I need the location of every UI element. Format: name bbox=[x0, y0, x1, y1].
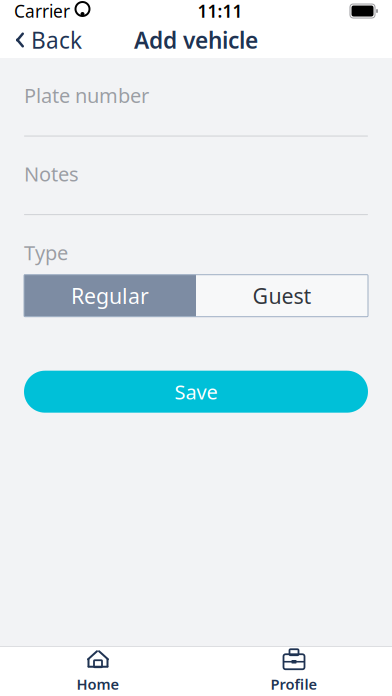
staticText: Regular bbox=[71, 281, 149, 310]
staticText: Save bbox=[174, 378, 217, 405]
button[interactable]: Home bbox=[0, 647, 196, 696]
staticText: Profile bbox=[270, 674, 317, 694]
staticText: Carrier bbox=[14, 0, 70, 22]
staticText: Add vehicle bbox=[134, 25, 258, 55]
staticText: Type bbox=[24, 239, 68, 266]
staticText: 11:11 bbox=[197, 0, 242, 22]
staticText: Notes bbox=[24, 161, 79, 187]
staticText: Guest bbox=[252, 281, 311, 310]
button[interactable]: Back bbox=[0, 22, 96, 58]
button[interactable]: Regular bbox=[24, 275, 196, 317]
button[interactable]: Profile bbox=[196, 647, 392, 696]
staticText: Home bbox=[76, 674, 119, 694]
button[interactable]: Guest bbox=[196, 275, 368, 317]
staticText: Plate number bbox=[24, 82, 149, 109]
button[interactable]: Save bbox=[24, 371, 368, 413]
staticText: Back bbox=[31, 25, 82, 55]
